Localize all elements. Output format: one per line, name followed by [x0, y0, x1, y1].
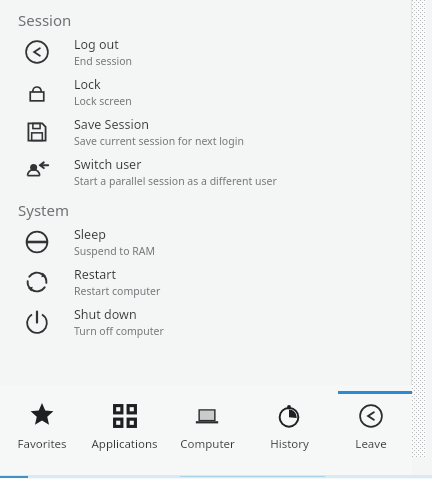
button[interactable]: Shut down [0, 302, 432, 342]
button[interactable]: Computer [166, 403, 248, 452]
button[interactable]: Lock [0, 72, 432, 112]
staticText: Suspend to RAM [74, 244, 155, 258]
staticText: Start a parallel session as a different … [74, 174, 277, 188]
staticText: Restart computer [74, 284, 161, 298]
staticText: Turn off computer [74, 324, 164, 338]
staticText: Computer [180, 436, 235, 452]
button[interactable]: Log out [0, 32, 432, 72]
button[interactable]: Sleep [0, 222, 432, 262]
staticText: Shut down [74, 306, 137, 323]
staticText: System [18, 200, 69, 220]
button[interactable]: Favorites [0, 403, 83, 452]
staticText: Lock screen [74, 94, 132, 108]
staticText: Favorites [17, 436, 67, 452]
button[interactable]: History [248, 403, 330, 452]
staticText: Log out [74, 36, 119, 53]
button[interactable]: Switch user [0, 152, 432, 192]
staticText: Applications [91, 436, 158, 452]
button[interactable]: Applications [83, 403, 166, 452]
staticText: Restart [74, 266, 117, 283]
staticText: History [270, 436, 309, 452]
staticText: Lock [74, 76, 101, 93]
staticText: End session [74, 54, 133, 68]
button[interactable]: Leave [330, 403, 412, 452]
staticText: Session [18, 10, 72, 30]
staticText: Save current session for next login [74, 134, 244, 148]
staticText: Switch user [74, 156, 142, 173]
button[interactable]: Save Session [0, 112, 432, 152]
staticText: Save Session [74, 116, 149, 133]
staticText: Sleep [74, 226, 106, 243]
staticText: Leave [355, 436, 387, 452]
button[interactable]: Restart [0, 262, 432, 302]
